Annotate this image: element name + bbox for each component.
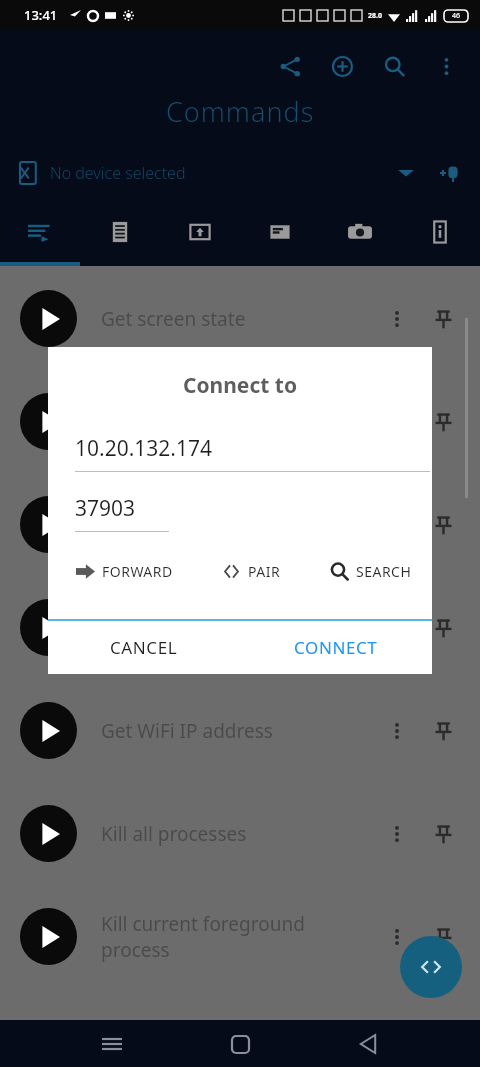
button[interactable]: Recents (90, 1022, 134, 1066)
button[interactable]: More (380, 611, 414, 645)
button[interactable]: More options (426, 46, 466, 86)
button[interactable]: Tab 6 (400, 198, 480, 266)
button[interactable]: Get Android version (0, 473, 480, 576)
button[interactable]: Tab 4 (240, 198, 320, 266)
staticText: Kill all processes (101, 821, 380, 847)
button[interactable]: Tab 2 (80, 198, 160, 266)
staticText: 13:41 (24, 6, 58, 24)
button[interactable]: FORWARD (74, 556, 175, 587)
staticText: Get screen rotation (101, 602, 380, 654)
button[interactable]: Pin (426, 817, 460, 851)
button[interactable]: Pin (426, 714, 460, 748)
button[interactable]: Kill all processes (0, 782, 480, 885)
button[interactable]: CANCEL (48, 621, 240, 674)
button[interactable]: Pin (426, 920, 460, 954)
staticText: SEARCH (356, 562, 412, 581)
button[interactable]: Add (322, 46, 362, 86)
button[interactable]: Get device model (0, 370, 480, 473)
button[interactable]: Pin (426, 302, 460, 336)
button[interactable]: Tab 5 (320, 198, 400, 266)
button[interactable]: More (380, 714, 414, 748)
staticText: Kill current foreground process (101, 911, 380, 963)
button[interactable]: Add device (436, 159, 464, 187)
button[interactable]: Pin (426, 405, 460, 439)
staticText: CANCEL (110, 636, 178, 659)
button[interactable]: More (380, 817, 414, 851)
staticText: Get Android version (101, 512, 380, 538)
button[interactable]: Pin (426, 508, 460, 542)
button[interactable]: Run shell command (400, 936, 462, 998)
button[interactable]: More (380, 920, 414, 954)
button[interactable]: More (380, 302, 414, 336)
button[interactable]: Share (270, 46, 310, 86)
button[interactable]: Search (374, 46, 414, 86)
button[interactable]: Get screen rotation (0, 576, 480, 679)
staticText: 46 (452, 11, 461, 21)
staticText: No device selected (50, 162, 186, 184)
button[interactable]: PAIR (220, 556, 283, 587)
button[interactable]: Tab 1 (0, 198, 80, 266)
staticText: Get screen state (101, 306, 380, 332)
button[interactable]: No device selected (16, 148, 464, 198)
staticText: 10.20.132.174 (75, 434, 213, 463)
button[interactable]: Home (218, 1022, 262, 1066)
staticText: Connect to (48, 371, 432, 400)
button[interactable]: Get WiFi IP address (0, 679, 480, 782)
button[interactable]: Tab 3 (160, 198, 240, 266)
staticText: Get WiFi IP address (101, 718, 380, 744)
button[interactable]: CONNECT (240, 621, 432, 674)
button[interactable]: Kill current foreground process (0, 885, 480, 988)
staticText: Commands (166, 93, 315, 130)
staticText: CONNECT (294, 636, 378, 659)
button[interactable]: Back (346, 1022, 390, 1066)
button[interactable]: SEARCH (328, 556, 414, 587)
button[interactable]: Pin (426, 611, 460, 645)
staticText: 37903 (75, 494, 136, 523)
staticText: FORWARD (102, 562, 173, 581)
staticText: PAIR (248, 562, 281, 581)
staticText: 28.0 (368, 11, 382, 21)
button[interactable]: Get screen state (0, 267, 480, 370)
